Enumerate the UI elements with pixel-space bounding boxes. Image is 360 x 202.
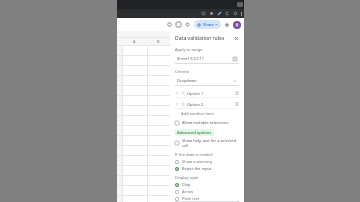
staticText: C	[181, 39, 184, 44]
button[interactable]: Sheet1!C2:C11	[175, 54, 239, 63]
staticText: Reject the input	[182, 166, 212, 171]
button[interactable]: Plain text	[175, 196, 239, 201]
staticText: Criteria	[175, 69, 189, 74]
staticText: Chip	[182, 182, 191, 187]
button[interactable]: Version history	[166, 21, 173, 28]
button[interactable]: Option 2	[175, 100, 239, 108]
staticText: Sheet1!C2:C11	[177, 56, 233, 61]
button[interactable]: A	[122, 38, 146, 45]
button[interactable]: Chip	[175, 182, 239, 187]
button[interactable]: Arrow	[175, 189, 239, 194]
button[interactable]: Show help text for a selected cell	[175, 138, 239, 148]
staticText: Plain text	[182, 196, 200, 201]
staticText: Share	[203, 22, 214, 27]
button[interactable]: Comments	[175, 21, 182, 28]
button[interactable]: Add another item	[181, 111, 214, 116]
button[interactable]: C	[170, 38, 194, 45]
staticText: Apply to range	[175, 47, 203, 52]
button[interactable]: Reject the input	[175, 166, 239, 171]
button[interactable]: Meet	[184, 21, 191, 28]
button[interactable]: Advanced options	[175, 129, 214, 136]
button[interactable]: Account	[233, 21, 241, 29]
button[interactable]: Share	[194, 20, 221, 29]
staticText: Option 2	[187, 102, 235, 107]
button[interactable]: Show a warning	[175, 159, 239, 164]
staticText: Show a warning	[182, 159, 212, 164]
staticText: Advanced options	[177, 130, 212, 135]
staticText: Option 1	[187, 91, 235, 96]
staticText: Data validation rules	[175, 35, 234, 42]
staticText: Allow multiple selections	[182, 120, 229, 125]
staticText: Show help text for a selected cell	[182, 138, 239, 148]
staticText: A	[133, 39, 136, 44]
button[interactable]: Allow multiple selections	[175, 120, 239, 125]
button[interactable]: Dropdown	[175, 76, 239, 85]
staticText: B	[157, 39, 160, 44]
button[interactable]: Option 1	[175, 89, 239, 97]
button[interactable]: Close	[234, 36, 239, 41]
button[interactable]: Add	[224, 22, 230, 28]
button[interactable]: B	[146, 38, 170, 45]
staticText: Arrow	[182, 189, 194, 194]
staticText: Display style	[175, 175, 199, 180]
staticText: Dropdown	[177, 78, 233, 83]
staticText: If the data is invalid:	[175, 152, 213, 157]
